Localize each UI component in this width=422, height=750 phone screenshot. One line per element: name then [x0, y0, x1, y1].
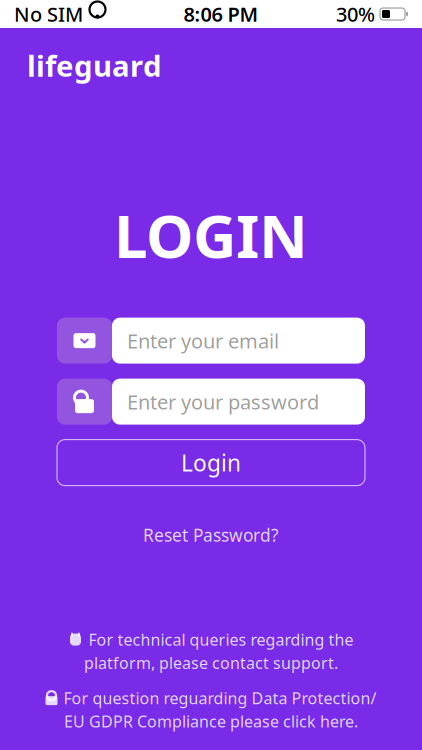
- staticText: For question reguarding Data Protection/: [63, 687, 376, 709]
- staticText: ⌄: [76, 325, 93, 348]
- button[interactable]: For question reguarding Data Protection/: [41, 687, 381, 732]
- staticText: 8:06 PM: [183, 1, 258, 27]
- staticText: Enter your email: [127, 327, 279, 354]
- staticText: EU GDPR Compliance please click here.: [64, 711, 358, 732]
- staticText: For technical queries regarding the: [88, 629, 353, 650]
- staticText: Enter your password: [127, 388, 319, 415]
- button[interactable]: Enter your password: [57, 379, 365, 425]
- staticText: lifeguard: [27, 46, 162, 85]
- button[interactable]: Reset Password?: [133, 518, 289, 553]
- staticText: Login: [181, 448, 241, 478]
- button[interactable]: ⌄: [57, 318, 365, 364]
- staticText: platform, please contact support.: [84, 652, 338, 673]
- staticText: LOGIN: [114, 195, 308, 275]
- staticText: Reset Password?: [143, 524, 279, 547]
- button[interactable]: Login: [57, 440, 365, 486]
- staticText: 30%: [336, 1, 375, 27]
- staticText: No SIM: [14, 1, 83, 27]
- button[interactable]: For technical queries regarding the: [41, 629, 381, 673]
